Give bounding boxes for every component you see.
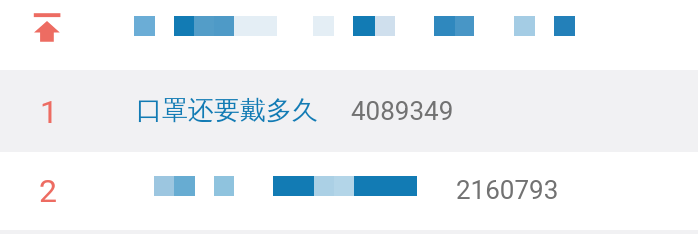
button[interactable]: 1 <box>0 70 698 152</box>
button[interactable]: Back to top <box>28 8 68 48</box>
staticText: 1 <box>40 93 58 131</box>
staticText: 2 <box>39 172 57 210</box>
staticText: 口罩还要戴多久 <box>136 94 318 127</box>
staticText: 4089349 <box>351 96 454 126</box>
staticText: 2160793 <box>456 175 559 205</box>
button[interactable]: 2 <box>0 152 698 230</box>
